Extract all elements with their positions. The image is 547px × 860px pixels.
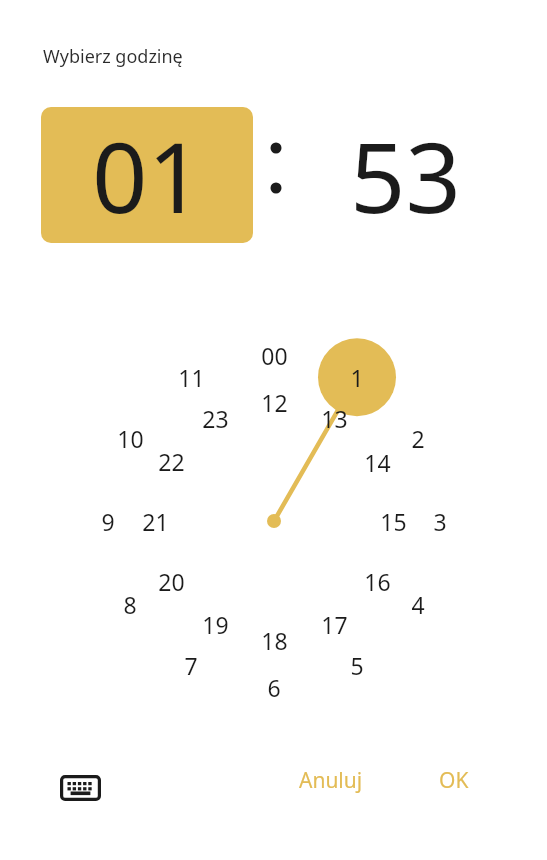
button[interactable]: 5 <box>335 650 379 680</box>
staticText: 19 <box>202 609 229 639</box>
staticText: 53 <box>350 109 461 241</box>
staticText: 13 <box>321 403 348 433</box>
button[interactable]: OK <box>418 756 490 804</box>
staticText: 20 <box>158 566 185 596</box>
staticText: 1 <box>350 362 364 392</box>
button[interactable]: 23 <box>193 403 237 433</box>
button[interactable]: 21 <box>133 506 177 536</box>
staticText: 16 <box>364 566 391 596</box>
button[interactable]: 12 <box>252 387 296 417</box>
button[interactable]: 22 <box>149 446 193 476</box>
button[interactable]: 19 <box>193 609 237 639</box>
button[interactable]: 2 <box>396 423 440 453</box>
button[interactable]: 14 <box>355 447 399 477</box>
button[interactable]: 20 <box>149 566 193 596</box>
staticText: 2 <box>411 423 425 453</box>
staticText: 11 <box>178 362 205 392</box>
staticText: Anuluj <box>299 766 363 795</box>
button[interactable]: 3 <box>418 506 462 536</box>
staticText: 8 <box>123 589 137 619</box>
staticText: 12 <box>261 387 288 417</box>
button[interactable]: 17 <box>312 609 356 639</box>
button[interactable]: 00 <box>252 340 296 370</box>
button[interactable]: 4 <box>396 589 440 619</box>
staticText: 21 <box>142 506 169 536</box>
button[interactable]: 18 <box>252 625 296 655</box>
staticText: 3 <box>433 506 447 536</box>
staticText: 22 <box>158 446 185 476</box>
staticText: 23 <box>202 403 229 433</box>
staticText: OK <box>439 766 469 795</box>
staticText: 15 <box>380 506 407 536</box>
button[interactable]: 16 <box>355 566 399 596</box>
button[interactable]: Anuluj <box>283 756 379 804</box>
button[interactable]: 1 <box>335 362 379 392</box>
staticText: 4 <box>411 589 425 619</box>
button[interactable]: 7 <box>169 650 213 680</box>
staticText: 9 <box>101 506 115 536</box>
button[interactable]: 11 <box>169 362 213 392</box>
button[interactable]: 6 <box>252 672 296 702</box>
button[interactable]: 9 <box>86 506 130 536</box>
staticText: 6 <box>267 672 281 702</box>
button[interactable]: Przełącz na wprowadzanie tekstu <box>48 756 112 820</box>
button[interactable]: 8 <box>108 589 152 619</box>
button[interactable]: 15 <box>371 506 415 536</box>
staticText: Wybierz godzinę <box>43 44 183 69</box>
button[interactable]: 13 <box>312 403 356 433</box>
staticText: 14 <box>364 447 391 477</box>
button[interactable]: 10 <box>108 423 152 453</box>
staticText: 00 <box>261 340 288 370</box>
staticText: 18 <box>261 625 288 655</box>
staticText: 10 <box>117 423 144 453</box>
staticText: 17 <box>321 609 348 639</box>
staticText: 7 <box>184 650 198 680</box>
staticText: 01 <box>92 109 203 241</box>
staticText: 5 <box>350 650 364 680</box>
button[interactable]: 01 <box>41 107 253 243</box>
button[interactable]: 53 <box>299 107 511 243</box>
